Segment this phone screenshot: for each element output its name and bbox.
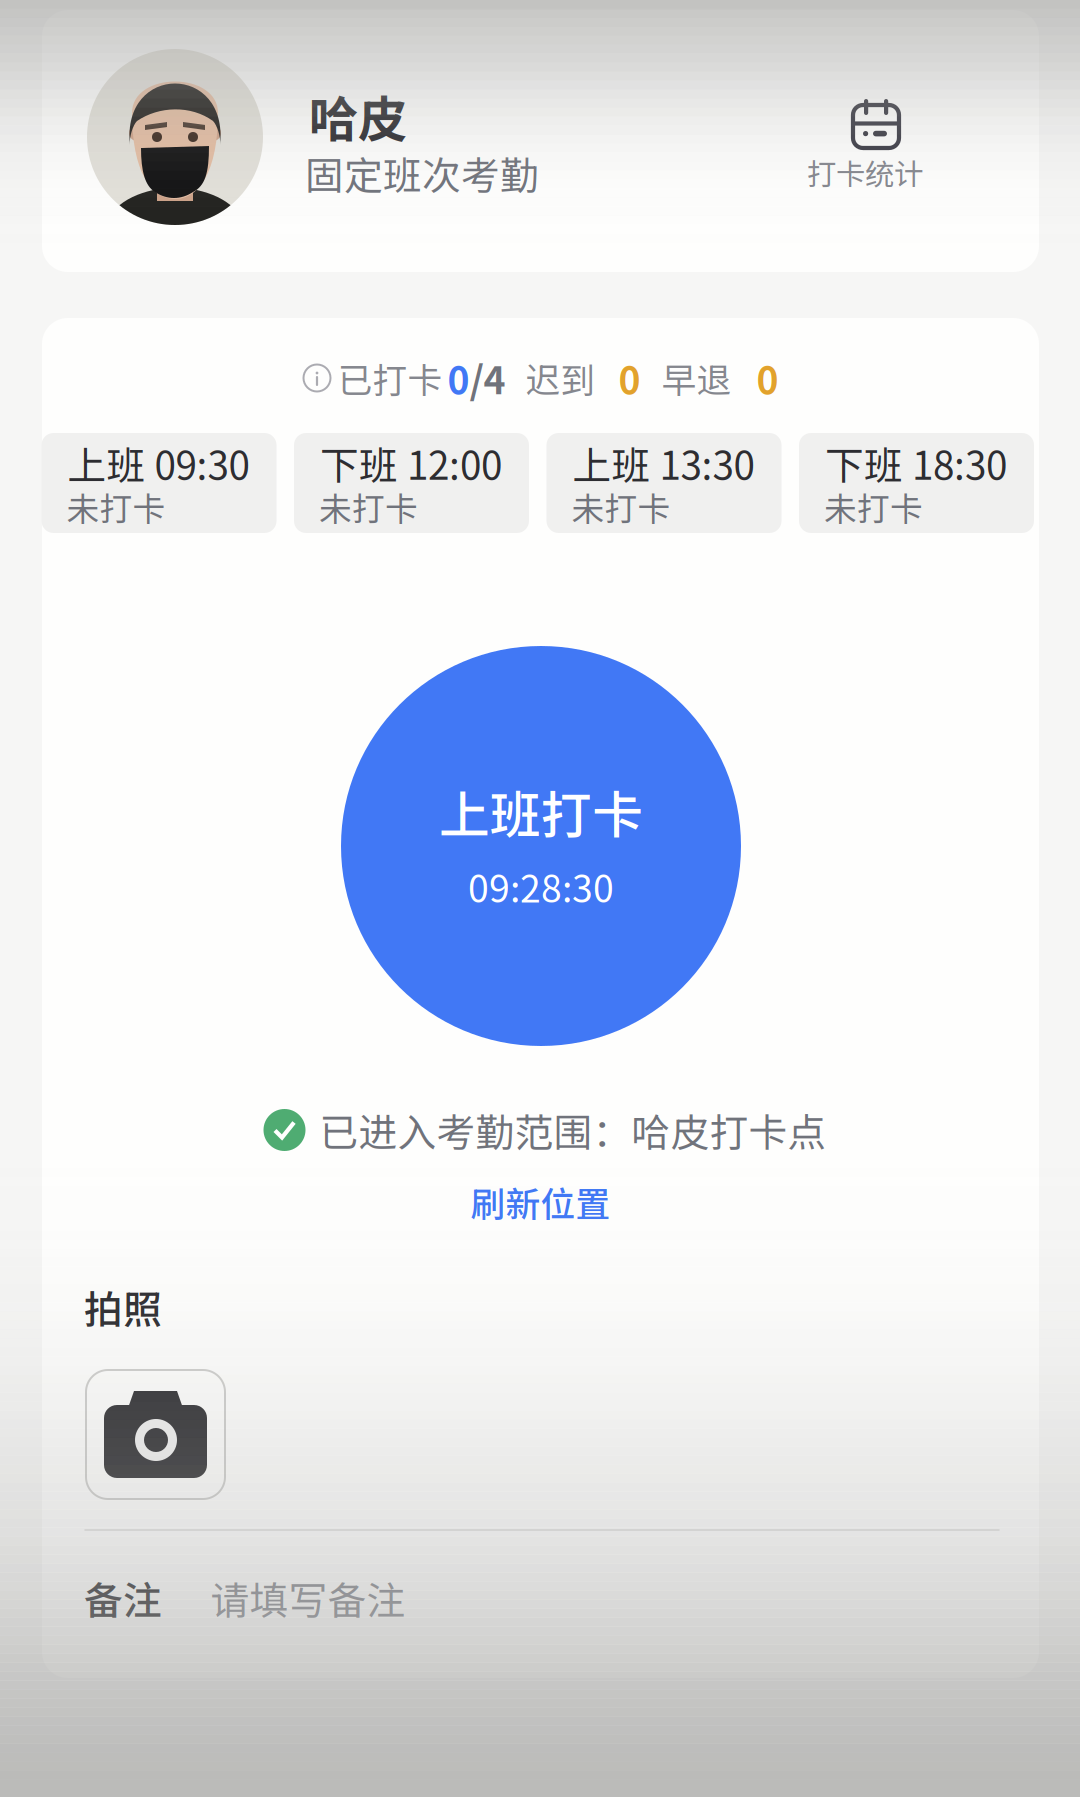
staticText: 备注 (84, 1570, 162, 1626)
staticText: 0 (618, 351, 640, 405)
staticText: 上班打卡 (439, 775, 643, 848)
staticText: /4 (469, 351, 505, 405)
staticText: 未打卡 (319, 483, 418, 530)
staticText: 下班 12:00 (320, 435, 502, 491)
staticText: 迟到 (525, 353, 595, 403)
button[interactable]: 打卡统计 (780, 95, 950, 219)
staticText: 已进入考勤范围：哈皮打卡点 (319, 1102, 826, 1158)
staticText: 刷新位置 (470, 1177, 610, 1227)
staticText: 上班 13:30 (572, 435, 754, 491)
staticText: 0 (447, 351, 469, 405)
staticText: 未打卡 (824, 483, 923, 530)
button[interactable]: 上班 09:30 (41, 433, 276, 533)
staticText: 未打卡 (66, 483, 165, 530)
staticText: 早退 (661, 353, 731, 403)
staticText: 已打卡 (337, 353, 442, 403)
staticText: 0 (756, 351, 778, 405)
staticText: 上班 09:30 (67, 435, 249, 491)
staticText: 下班 18:30 (825, 435, 1007, 491)
staticText: 拍照 (84, 1279, 162, 1335)
staticText: 打卡统计 (807, 151, 923, 193)
staticText: 09:28:30 (468, 859, 614, 913)
staticText: 请填写备注 (210, 1570, 405, 1626)
button[interactable]: 拍照 (86, 1370, 225, 1499)
button[interactable]: 上班打卡 (341, 646, 741, 1046)
staticText: 哈皮 (309, 80, 407, 152)
staticText: 固定班次考勤 (305, 145, 539, 201)
staticText: 未打卡 (571, 483, 670, 530)
button[interactable]: 刷新位置 (420, 1172, 660, 1232)
button[interactable]: 上班 13:30 (546, 433, 781, 533)
button[interactable]: 下班 12:00 (294, 433, 529, 533)
button[interactable]: 下班 18:30 (799, 433, 1034, 533)
